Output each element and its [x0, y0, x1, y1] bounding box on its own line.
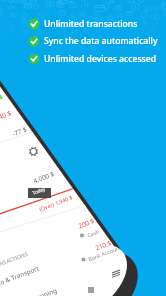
other: Premium features: [0, 0, 166, 296]
